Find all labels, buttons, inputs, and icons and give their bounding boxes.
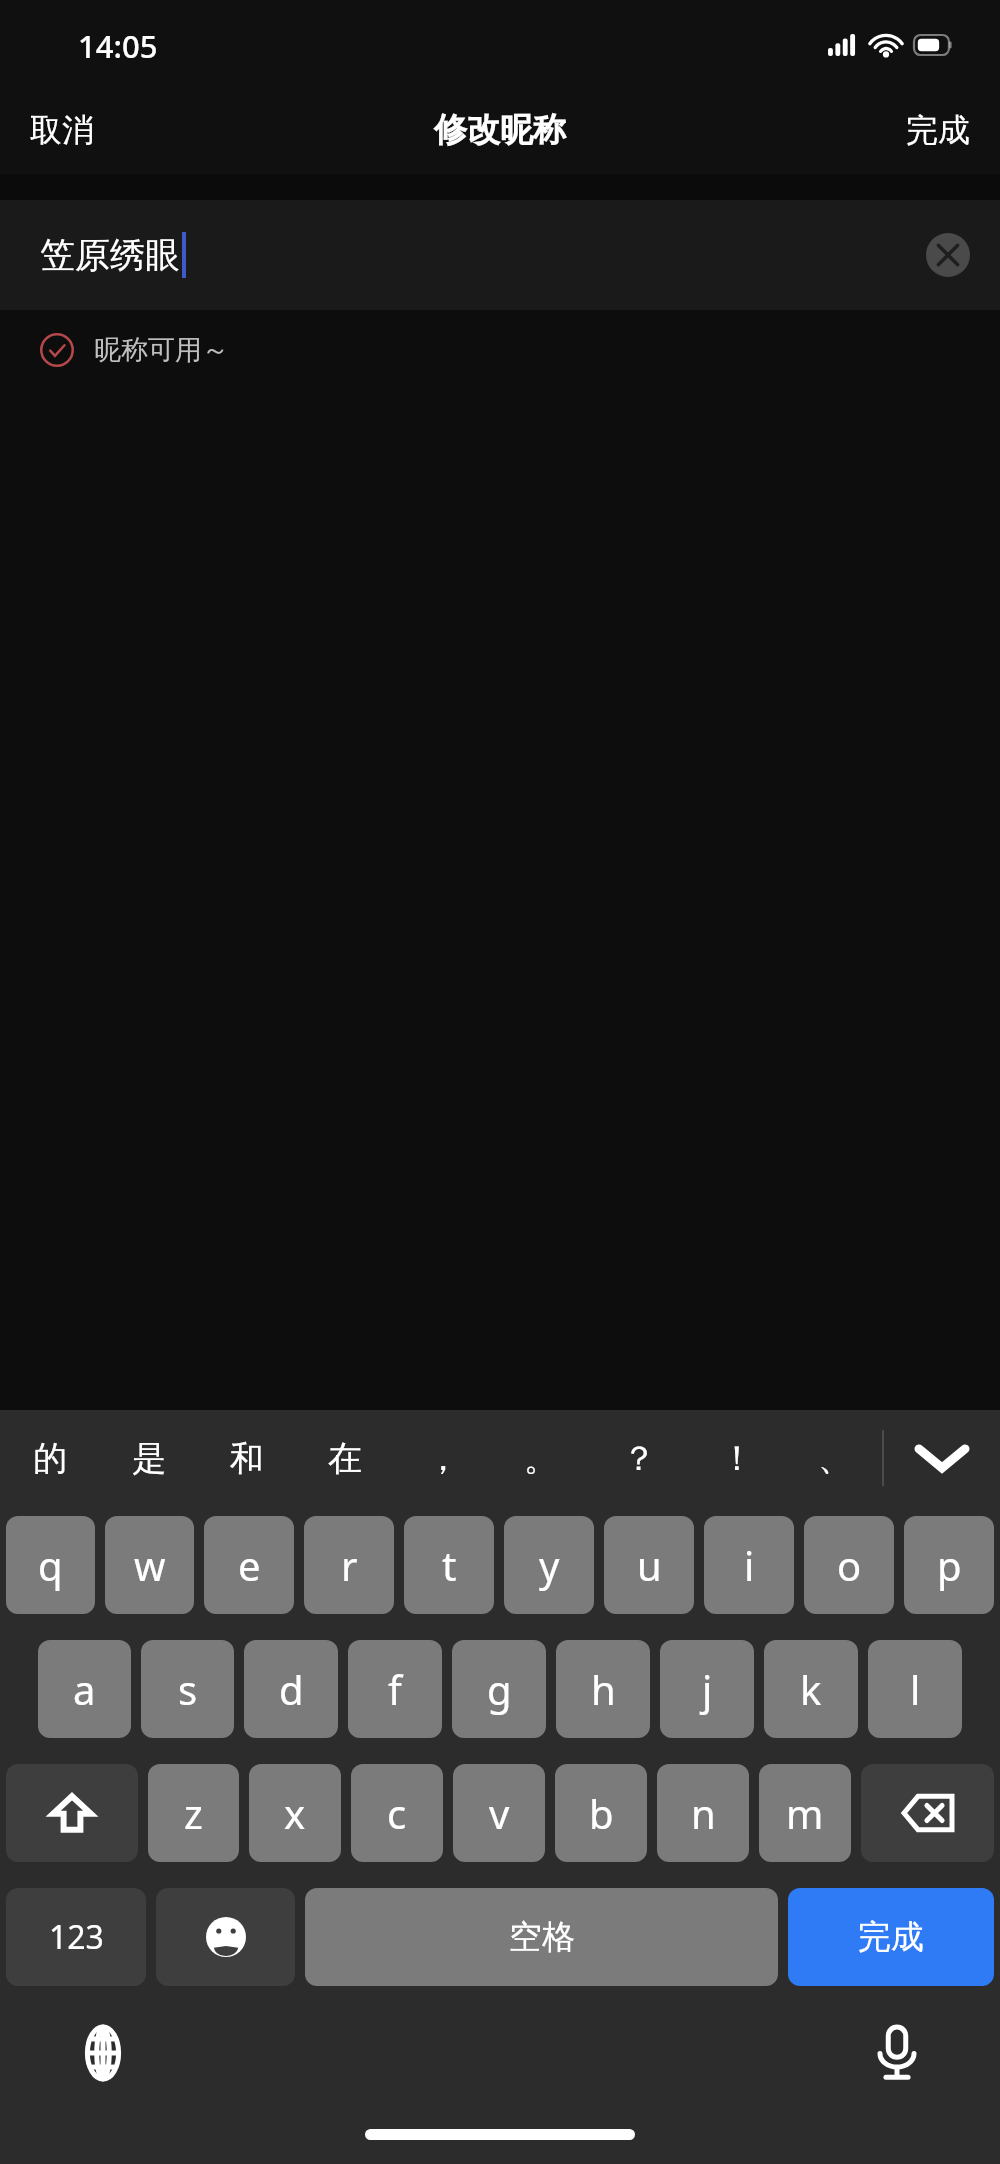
- staticText: p: [937, 1538, 962, 1592]
- staticText: x: [284, 1786, 306, 1840]
- staticText: f: [388, 1662, 402, 1716]
- staticText: s: [178, 1662, 198, 1716]
- staticText: o: [837, 1538, 862, 1592]
- staticText: 取消: [30, 110, 94, 150]
- button[interactable]: d: [244, 1640, 338, 1738]
- button[interactable]: f: [348, 1640, 442, 1738]
- staticText: b: [589, 1786, 614, 1840]
- button[interactable]: 的: [0, 1410, 99, 1506]
- button[interactable]: 在: [296, 1410, 394, 1506]
- button[interactable]: 笠原绣眼: [0, 200, 1000, 310]
- staticText: 完成: [906, 110, 970, 150]
- staticText: l: [910, 1662, 921, 1716]
- staticText: 的: [33, 1437, 67, 1480]
- button[interactable]: r: [304, 1516, 394, 1614]
- staticText: v: [489, 1786, 510, 1840]
- button[interactable]: e: [204, 1516, 294, 1614]
- staticText: ！: [720, 1437, 754, 1480]
- staticText: h: [591, 1662, 616, 1716]
- staticText: a: [73, 1662, 96, 1716]
- button[interactable]: l: [868, 1640, 962, 1738]
- staticText: 、: [818, 1437, 852, 1480]
- button[interactable]: t: [404, 1516, 494, 1614]
- button[interactable]: x: [249, 1764, 341, 1862]
- button[interactable]: ？: [590, 1410, 688, 1506]
- staticText: g: [487, 1662, 512, 1716]
- button[interactable]: u: [604, 1516, 694, 1614]
- staticText: q: [38, 1538, 63, 1592]
- button[interactable]: i: [704, 1516, 794, 1614]
- staticText: r: [341, 1538, 358, 1592]
- staticText: e: [238, 1538, 261, 1592]
- staticText: 昵称可用～: [94, 333, 229, 367]
- button[interactable]: ，: [394, 1410, 492, 1506]
- button[interactable]: v: [453, 1764, 545, 1862]
- button[interactable]: m: [759, 1764, 851, 1862]
- button[interactable]: Clear text: [918, 225, 978, 285]
- button[interactable]: Emoji: [156, 1888, 295, 1986]
- button[interactable]: w: [105, 1516, 194, 1614]
- button[interactable]: 、: [786, 1410, 884, 1506]
- button[interactable]: n: [657, 1764, 749, 1862]
- staticText: ？: [622, 1437, 656, 1480]
- staticText: j: [702, 1662, 713, 1716]
- button[interactable]: a: [38, 1640, 131, 1738]
- button[interactable]: Shift: [6, 1764, 138, 1862]
- staticText: t: [442, 1538, 457, 1592]
- staticText: 在: [328, 1437, 362, 1480]
- staticText: 修改昵称: [434, 109, 566, 151]
- staticText: m: [786, 1786, 824, 1840]
- staticText: u: [637, 1538, 662, 1592]
- button[interactable]: Hide keyboard: [884, 1410, 1000, 1506]
- button[interactable]: 是: [99, 1410, 198, 1506]
- button[interactable]: q: [6, 1516, 95, 1614]
- staticText: 。: [524, 1437, 558, 1480]
- button[interactable]: 完成: [788, 1888, 994, 1986]
- button[interactable]: o: [804, 1516, 894, 1614]
- button[interactable]: 空格: [305, 1888, 778, 1986]
- staticText: c: [387, 1786, 407, 1840]
- staticText: i: [744, 1538, 755, 1592]
- staticText: 笠原绣眼: [40, 233, 180, 277]
- button[interactable]: y: [504, 1516, 594, 1614]
- button[interactable]: Backspace: [861, 1764, 994, 1862]
- button[interactable]: z: [148, 1764, 239, 1862]
- button[interactable]: c: [351, 1764, 443, 1862]
- button[interactable]: 取消: [0, 96, 124, 164]
- button[interactable]: g: [452, 1640, 546, 1738]
- button[interactable]: k: [764, 1640, 858, 1738]
- staticText: w: [134, 1538, 166, 1592]
- button[interactable]: ！: [688, 1410, 786, 1506]
- staticText: n: [691, 1786, 716, 1840]
- staticText: 空格: [509, 1916, 575, 1958]
- button[interactable]: 和: [198, 1410, 296, 1506]
- staticText: 是: [132, 1437, 166, 1480]
- staticText: y: [539, 1538, 560, 1592]
- button[interactable]: s: [141, 1640, 234, 1738]
- button[interactable]: h: [556, 1640, 650, 1738]
- staticText: ，: [426, 1437, 460, 1480]
- button[interactable]: Switch keyboard language: [70, 2020, 136, 2086]
- staticText: z: [184, 1786, 203, 1840]
- button[interactable]: j: [660, 1640, 754, 1738]
- button[interactable]: 完成: [876, 96, 1000, 164]
- staticText: d: [279, 1662, 304, 1716]
- staticText: k: [800, 1662, 822, 1716]
- staticText: 14:05: [78, 25, 158, 67]
- button[interactable]: p: [904, 1516, 994, 1614]
- button[interactable]: 。: [492, 1410, 590, 1506]
- button[interactable]: Dictation: [864, 2020, 930, 2086]
- button[interactable]: 123: [6, 1888, 146, 1986]
- staticText: 和: [230, 1437, 264, 1480]
- staticText: 123: [49, 1915, 104, 1959]
- staticText: 完成: [858, 1916, 924, 1958]
- button[interactable]: b: [555, 1764, 647, 1862]
